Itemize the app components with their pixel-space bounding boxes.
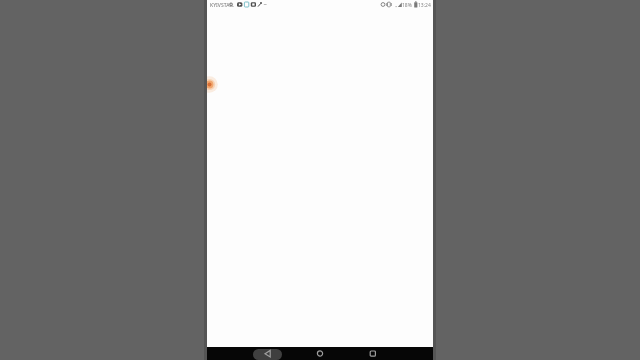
staticText: KYIVSTAR bbox=[210, 2, 233, 9]
staticText: 18% bbox=[402, 2, 412, 9]
button[interactable] bbox=[207, 76, 218, 93]
button[interactable] bbox=[310, 347, 330, 360]
staticText: 13:24 bbox=[418, 2, 431, 9]
button[interactable] bbox=[253, 349, 282, 360]
button[interactable] bbox=[363, 347, 383, 360]
